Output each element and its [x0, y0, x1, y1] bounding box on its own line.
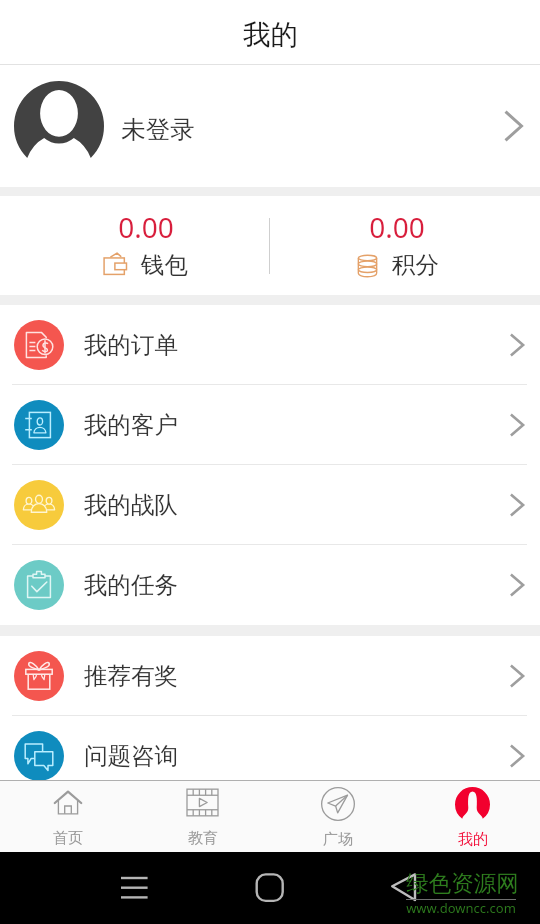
staticText: 首页	[53, 829, 83, 848]
button[interactable]: 未登录	[0, 65, 540, 187]
button[interactable]: 0.00	[0, 196, 269, 295]
button[interactable]: 首页	[0, 781, 135, 852]
staticText: 广场	[323, 830, 353, 849]
button[interactable]: 教育	[135, 781, 270, 852]
button[interactable]: Recent apps	[121, 876, 149, 900]
button[interactable]: 我的订单	[0, 305, 540, 384]
button[interactable]: 广场	[270, 781, 405, 852]
staticText: 推荐有奖	[84, 661, 178, 691]
button[interactable]: Back	[390, 873, 418, 901]
staticText: www.downcc.com	[406, 899, 516, 917]
staticText: 未登录	[121, 114, 195, 145]
button[interactable]: 我的	[405, 781, 540, 852]
staticText: 问题咨询	[84, 741, 178, 771]
button[interactable]: 0.00	[270, 196, 540, 295]
button[interactable]: 我的客户	[0, 385, 540, 464]
staticText: 我的	[458, 830, 488, 849]
button[interactable]: Home	[256, 874, 284, 902]
staticText: 0.00	[118, 208, 174, 246]
button[interactable]: 我的战队	[0, 465, 540, 544]
button[interactable]: 推荐有奖	[0, 636, 540, 715]
staticText: 绿色资源网	[406, 869, 519, 897]
button[interactable]: 问题咨询	[0, 716, 540, 796]
staticText: 钱包	[141, 250, 188, 280]
staticText: 我的订单	[84, 330, 178, 360]
staticText: 我的客户	[84, 410, 178, 440]
staticText: 我的战队	[84, 490, 178, 520]
staticText: 我的	[243, 18, 298, 53]
staticText: 我的任务	[84, 570, 178, 600]
staticText: 积分	[392, 250, 439, 280]
staticText: 教育	[188, 829, 218, 848]
staticText: 0.00	[369, 208, 425, 246]
button[interactable]: 我的任务	[0, 545, 540, 625]
